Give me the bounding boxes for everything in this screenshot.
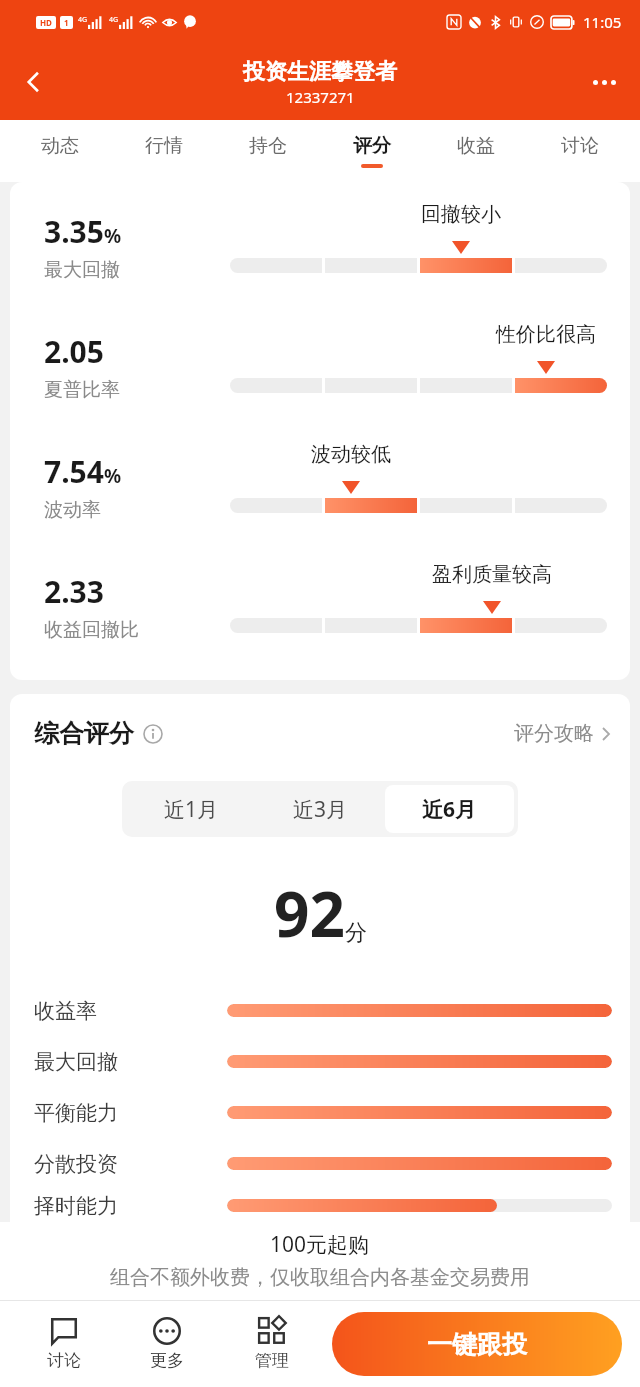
staticText: 分散投资 <box>34 1151 118 1177</box>
staticText: 波动率 <box>44 498 101 522</box>
staticText: 动态 <box>41 134 79 158</box>
staticText: 平衡能力 <box>34 1100 118 1126</box>
staticText: 近1月 <box>164 795 219 824</box>
button[interactable]: 讨论 <box>528 120 632 182</box>
button[interactable]: 管理 <box>222 1313 322 1375</box>
staticText: 回撤较小 <box>391 202 531 227</box>
staticText: 92 <box>274 871 345 955</box>
staticText: 4G <box>109 15 119 25</box>
staticText: 夏普比率 <box>44 378 120 402</box>
button[interactable]: 持仓 <box>216 120 320 182</box>
staticText: 盈利质量较高 <box>422 562 562 587</box>
button[interactable]: 评分攻略 <box>514 721 612 746</box>
button[interactable]: 行情 <box>112 120 216 182</box>
staticText: 讨论 <box>47 1350 81 1371</box>
button[interactable]: 收益 <box>424 120 528 182</box>
staticText: 讨论 <box>561 134 599 158</box>
staticText: 11:05 <box>583 12 622 32</box>
button[interactable]: 动态 <box>8 120 112 182</box>
staticText: 性价比很高 <box>476 322 616 347</box>
staticText: 评分 <box>353 134 391 158</box>
staticText: 更多 <box>150 1350 184 1371</box>
staticText: 3.35 <box>44 211 104 252</box>
staticText: 评分攻略 <box>514 721 594 746</box>
button[interactable]: 更多 <box>112 1313 222 1375</box>
button[interactable]: More options <box>580 58 628 106</box>
staticText: HD <box>40 17 52 28</box>
button[interactable]: Info <box>142 723 164 745</box>
staticText: % <box>104 223 122 249</box>
staticText: 近3月 <box>293 795 348 824</box>
staticText: 持仓 <box>249 134 287 158</box>
button[interactable]: 讨论 <box>16 1313 112 1375</box>
button[interactable]: 评分 <box>320 120 424 182</box>
staticText: 最大回撤 <box>44 258 120 282</box>
button[interactable]: 近1月 <box>126 785 256 833</box>
staticText: 一键跟投 <box>427 1329 527 1360</box>
button[interactable]: 一键跟投 <box>332 1312 622 1376</box>
staticText: % <box>104 463 122 489</box>
button[interactable]: Back <box>10 58 58 106</box>
staticText: 收益 <box>457 134 495 158</box>
staticText: 4G <box>78 15 88 25</box>
button[interactable]: 近3月 <box>256 785 385 833</box>
staticText: 管理 <box>255 1350 289 1371</box>
button[interactable]: 近6月 <box>385 785 514 833</box>
staticText: 综合评分 <box>34 718 134 749</box>
staticText: 择时能力 <box>34 1193 118 1219</box>
staticText: 100元起购 <box>270 1230 370 1259</box>
staticText: 收益回撤比 <box>44 618 139 642</box>
staticText: 组合不额外收费，仅收取组合内各基金交易费用 <box>110 1265 530 1290</box>
staticText: 波动较低 <box>281 442 421 467</box>
staticText: 行情 <box>145 134 183 158</box>
staticText: 7.54 <box>44 451 104 492</box>
staticText: 投资生涯攀登者 <box>243 58 397 86</box>
staticText: 近6月 <box>422 795 477 824</box>
staticText: 12337271 <box>286 87 355 107</box>
staticText: 1 <box>64 17 69 28</box>
staticText: 最大回撤 <box>34 1049 118 1075</box>
staticText: 2.33 <box>44 571 104 612</box>
staticText: 分 <box>345 919 367 947</box>
staticText: 2.05 <box>44 331 104 372</box>
staticText: 收益率 <box>34 998 97 1024</box>
